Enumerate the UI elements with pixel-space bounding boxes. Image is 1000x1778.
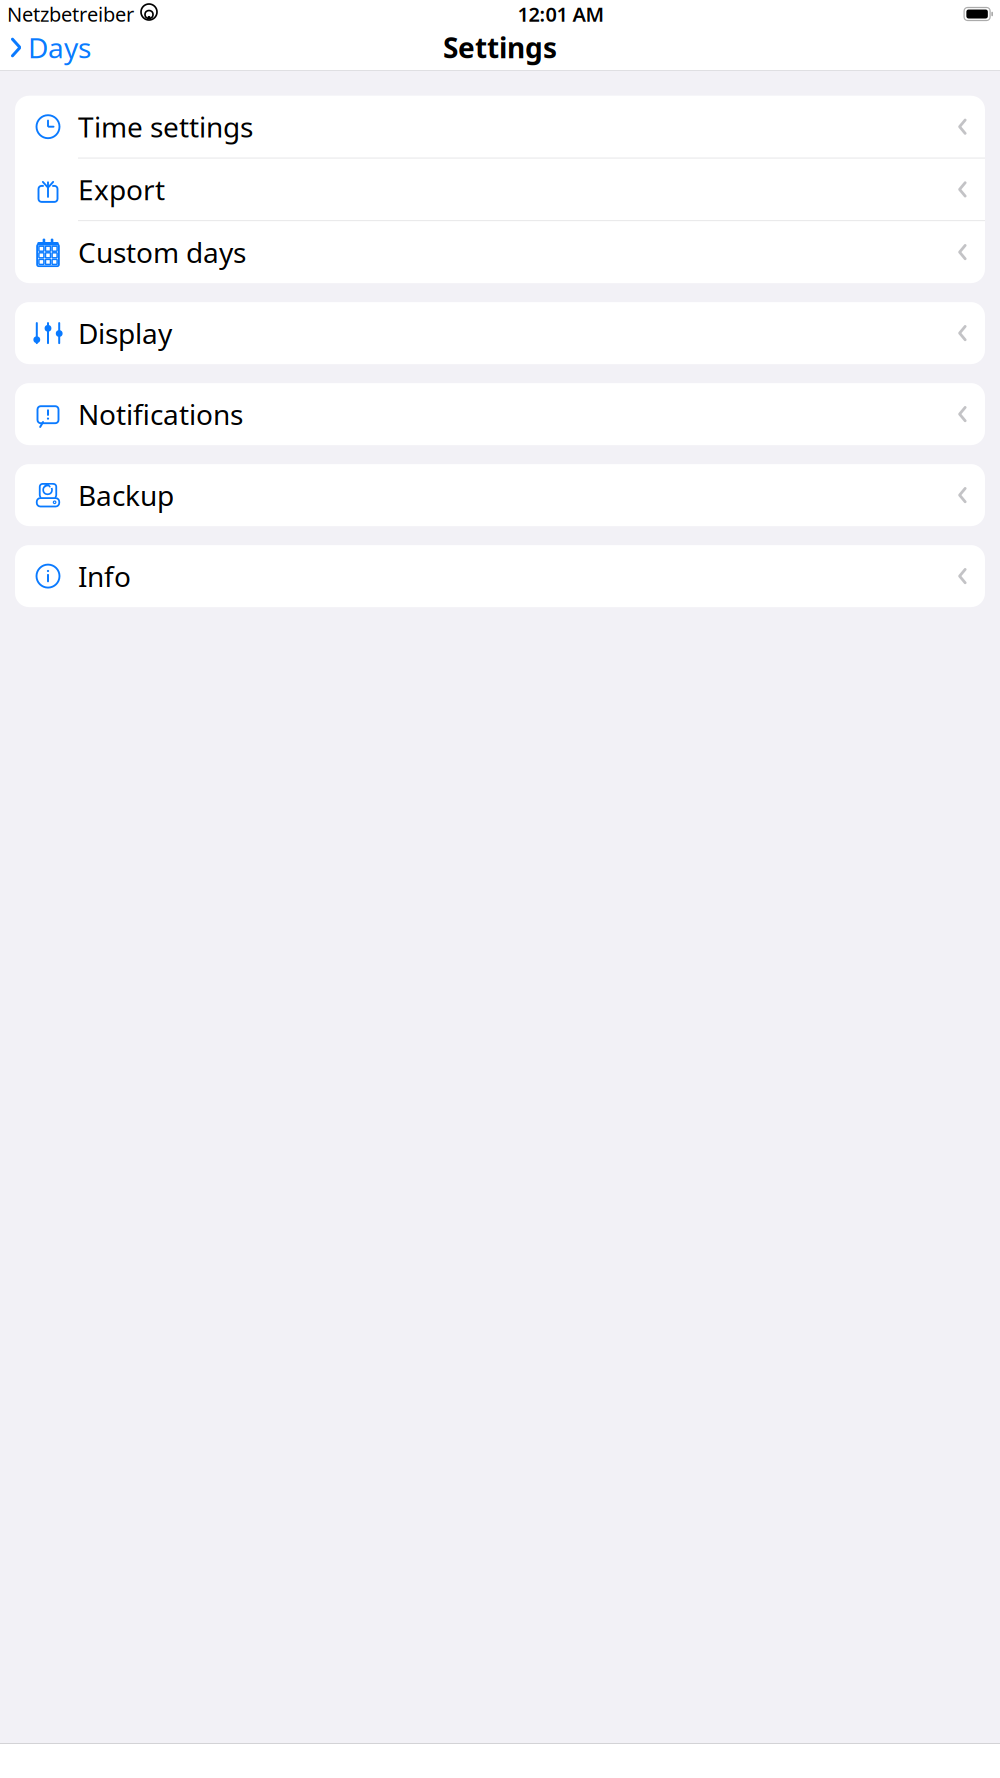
staticText: Info — [78, 557, 131, 595]
button[interactable]: Backup — [15, 464, 985, 526]
staticText: Backup — [78, 476, 174, 514]
button[interactable]: Display — [15, 302, 985, 364]
staticText: Days — [28, 29, 91, 66]
button[interactable]: Export — [15, 158, 985, 220]
staticText: Notifications — [78, 395, 243, 433]
staticText: Settings — [443, 29, 557, 66]
button[interactable]: Custom days — [15, 221, 985, 283]
staticText: Custom days — [78, 233, 246, 271]
staticText: 12:01 AM — [517, 1, 604, 27]
staticText: Netzbetreiber — [7, 1, 134, 27]
staticText: Display — [78, 314, 172, 352]
button[interactable]: Notifications — [15, 383, 985, 445]
button[interactable]: Time settings — [15, 96, 985, 158]
button[interactable]: Days — [0, 22, 99, 73]
staticText: Export — [78, 171, 165, 208]
button[interactable]: Info — [15, 545, 985, 607]
staticText: Time settings — [78, 108, 253, 145]
